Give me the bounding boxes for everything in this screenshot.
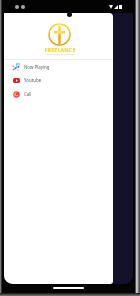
staticText: Now Playing [24,64,50,70]
button[interactable]: Youtube [4,73,113,87]
button[interactable]: Now Playing [4,60,113,74]
staticText: FREELANCE [44,46,76,53]
staticText: Call [24,91,32,97]
staticText: Youtube [24,77,42,83]
button[interactable]: Call [4,87,113,101]
staticText: CHURCH OF GOD MINISTRY [45,53,75,56]
